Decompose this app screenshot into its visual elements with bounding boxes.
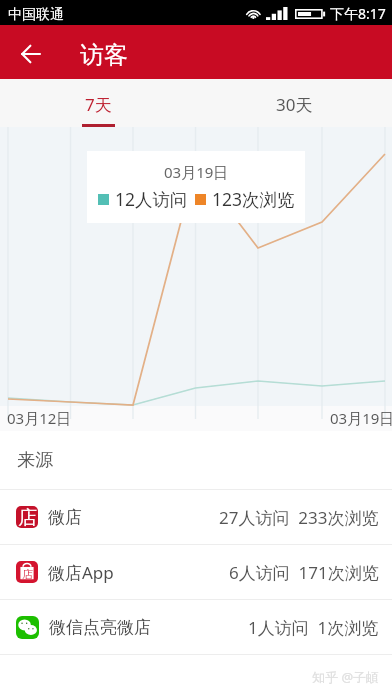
staticText: 7天 — [85, 93, 112, 116]
staticText: 27人访问 233次浏览 — [219, 506, 379, 529]
staticText: 1人访问 1次浏览 — [248, 616, 379, 639]
staticText: 微信点亮微店 — [49, 617, 151, 638]
staticText: 微店 — [48, 507, 82, 528]
staticText: 来源 — [17, 449, 53, 472]
button[interactable]: 店 — [0, 545, 392, 599]
button[interactable]: Back — [9, 32, 53, 76]
staticText: 6人访问 171次浏览 — [229, 561, 379, 584]
staticText: 微店App — [48, 561, 114, 584]
button[interactable]: 30天 — [196, 79, 392, 127]
staticText: 知乎 @子頔 — [312, 668, 380, 686]
staticText: 12人访问 — [115, 187, 188, 211]
button[interactable]: 微信点亮微店 — [0, 600, 392, 654]
staticText: 123次浏览 — [212, 187, 295, 211]
button[interactable]: 店 — [0, 490, 392, 544]
staticText: 03月19日 — [330, 408, 392, 428]
staticText: 店 — [18, 506, 37, 528]
staticText: 30天 — [276, 93, 313, 116]
staticText: 下午8:17 — [330, 4, 386, 23]
staticText: 中国联通 — [8, 6, 64, 24]
staticText: 访客 — [80, 40, 128, 70]
staticText: 店 — [22, 567, 33, 581]
staticText: 03月12日 — [7, 408, 72, 428]
staticText: 03月19日 — [164, 162, 229, 182]
button[interactable]: 7天 — [0, 79, 196, 127]
